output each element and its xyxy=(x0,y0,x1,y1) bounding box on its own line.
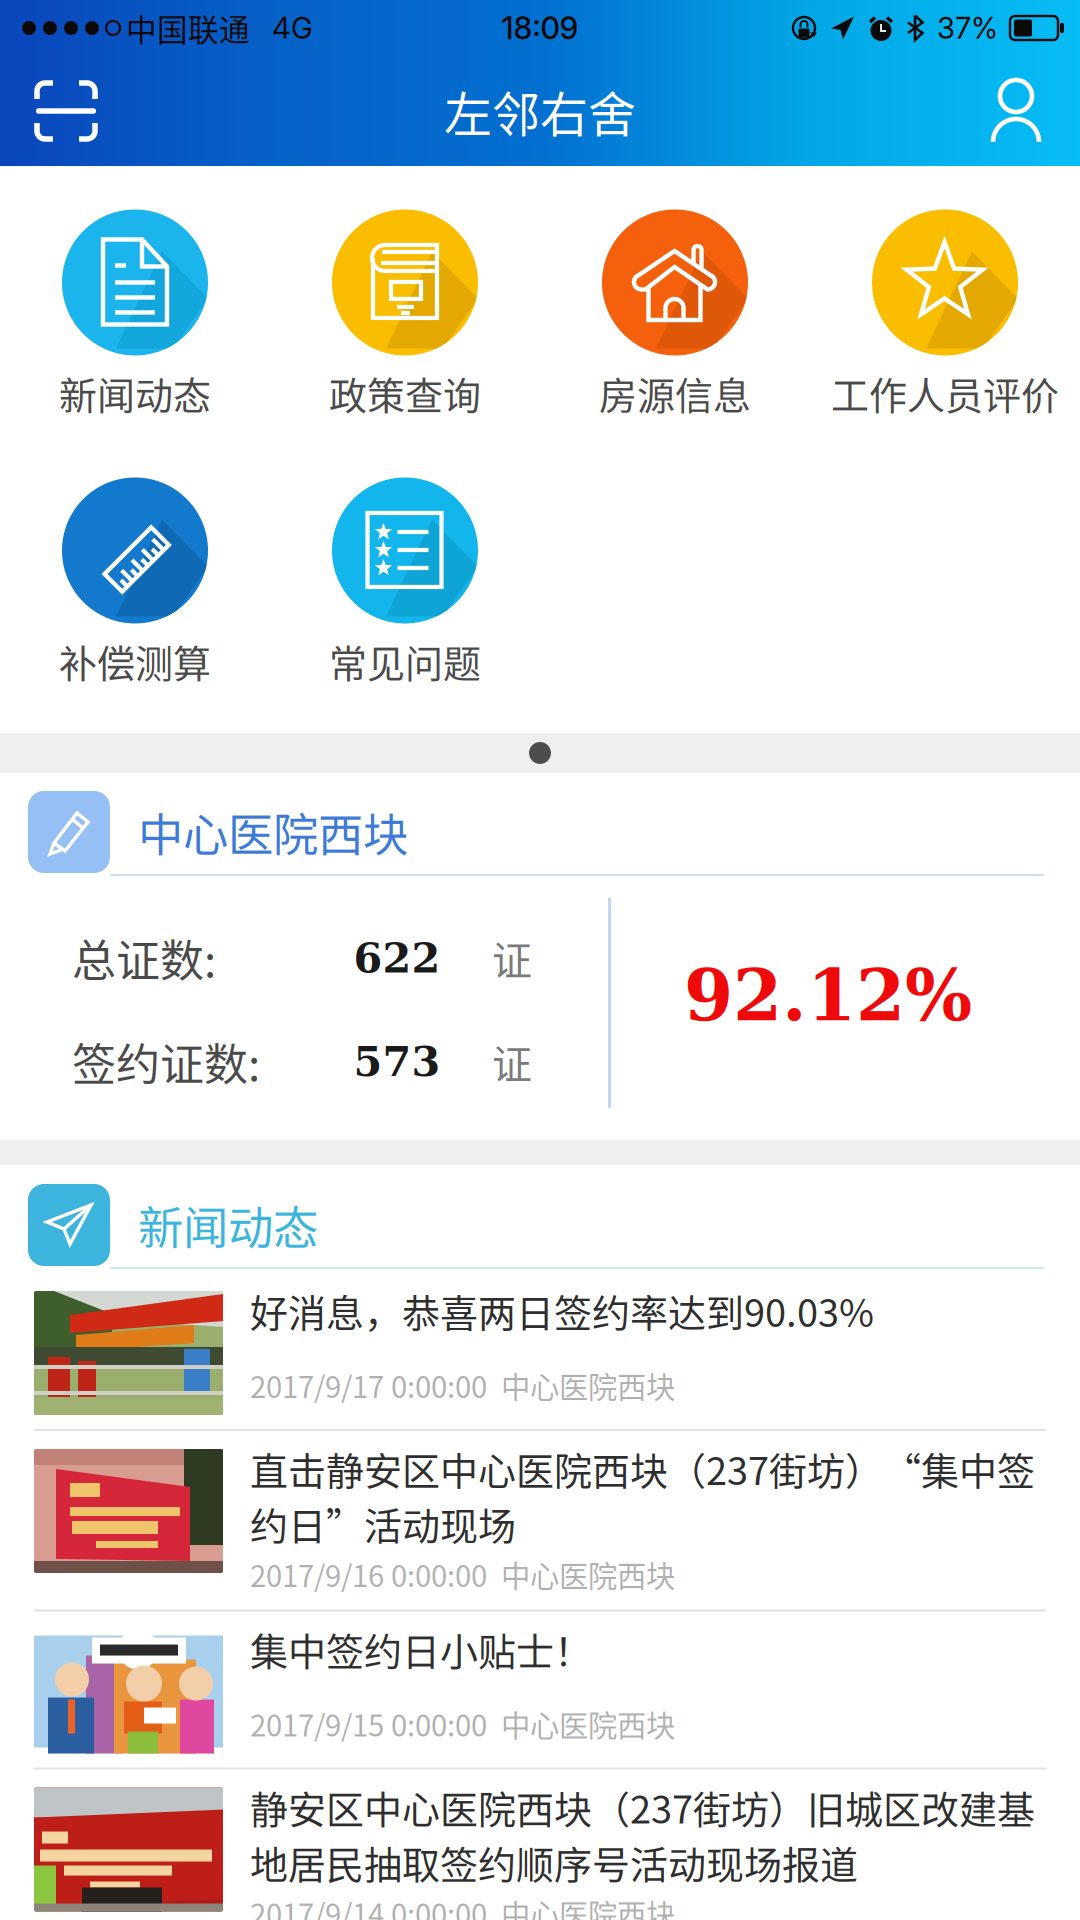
staticText: 新闻动态 xyxy=(59,365,211,420)
button[interactable]: Profile xyxy=(960,56,1080,166)
button[interactable]: 政策查询 xyxy=(270,200,540,430)
button[interactable]: 工作人员评价 xyxy=(810,200,1080,430)
staticText: 签约证数: xyxy=(72,1030,260,1093)
button[interactable]: Scan xyxy=(0,56,126,166)
staticText: 工作人员评价 xyxy=(831,365,1059,420)
staticText: 622 xyxy=(353,934,440,982)
staticText: 好消息，恭喜两日签约率达到90.03% xyxy=(250,1283,874,1338)
staticText: 证 xyxy=(492,929,532,987)
button[interactable]: 静安区中心医院西块（237街坊）旧城区改建基地居民抽取签约顺序号活动现场报道 xyxy=(0,1769,1080,1920)
button[interactable]: 直击静安区中心医院西块（237街坊）“集中签约日”活动现场 xyxy=(0,1431,1080,1611)
staticText: 4G xyxy=(272,10,313,46)
button[interactable]: 补偿测算 xyxy=(0,468,270,698)
staticText: 573 xyxy=(353,1037,440,1086)
staticText: 房源信息 xyxy=(599,365,751,420)
staticText: 2017/9/17 0:00:00 中心医院西块 xyxy=(250,1364,675,1406)
button[interactable]: 房源信息 xyxy=(540,200,810,430)
staticText: 证 xyxy=(492,1033,532,1090)
staticText: 2017/9/16 0:00:00 中心医院西块 xyxy=(250,1553,675,1595)
staticText: 直击静安区中心医院西块（237街坊）“集中签约日”活动现场 xyxy=(250,1441,1035,1551)
button[interactable]: 集中签约日小贴士！ xyxy=(0,1611,1080,1769)
staticText: 政策查询 xyxy=(329,365,481,420)
staticText: 左邻右舍 xyxy=(444,76,636,146)
button[interactable]: 好消息，恭喜两日签约率达到90.03% xyxy=(0,1273,1080,1431)
staticText: 92.12% xyxy=(684,954,972,1037)
staticText: 集中签约日小贴士！ xyxy=(250,1621,592,1676)
staticText: 补偿测算 xyxy=(59,633,211,688)
button[interactable]: 常见问题 xyxy=(270,468,540,698)
staticText: 静安区中心医院西块（237街坊）旧城区改建基地居民抽取签约顺序号活动现场报道 xyxy=(250,1779,1035,1889)
staticText: 37% xyxy=(937,10,998,46)
staticText: 新闻动态 xyxy=(138,1192,318,1258)
staticText: 中国联通 xyxy=(126,6,250,50)
staticText: 2017/9/14 0:00:00 中心医院西块 xyxy=(250,1892,675,1920)
staticText: 中心医院西块 xyxy=(138,799,408,865)
staticText: 常见问题 xyxy=(329,633,481,688)
staticText: 总证数: xyxy=(72,926,216,990)
button[interactable]: 新闻动态 xyxy=(0,200,270,430)
staticText: 18:09 xyxy=(501,9,578,46)
staticText: 2017/9/15 0:00:00 中心医院西块 xyxy=(250,1702,675,1745)
